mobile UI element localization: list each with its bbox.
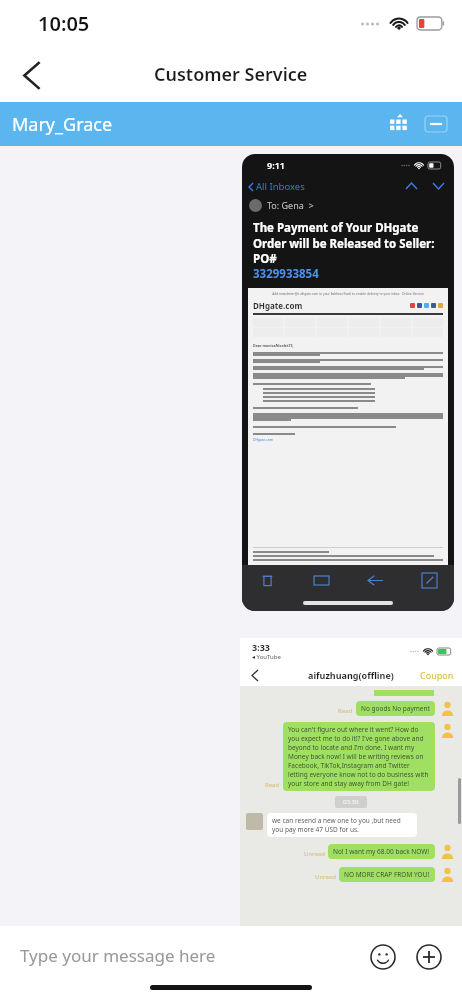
staticText: To: Gena >	[267, 199, 314, 211]
staticText: DHgate.com	[253, 437, 273, 442]
staticText: 03:30	[343, 798, 359, 806]
staticText: You can't figure out where it went? How …	[288, 725, 430, 788]
staticText: ◂ YouTube	[252, 653, 281, 661]
staticText: 9:11	[267, 159, 285, 171]
button[interactable]: Apps	[382, 106, 418, 142]
staticText: we can resend a new one to you ,but need…	[272, 816, 412, 834]
staticText: Read	[265, 781, 280, 789]
button[interactable]: 3:33	[240, 638, 462, 926]
button[interactable]: Back	[8, 52, 54, 98]
staticText: Customer Service	[154, 62, 308, 87]
staticText: Unread	[304, 850, 325, 858]
button[interactable]: Minimize	[418, 106, 454, 142]
button[interactable]: 9:11	[242, 154, 454, 611]
staticText: Type your message here	[20, 944, 216, 967]
staticText: Unread	[315, 873, 336, 881]
button[interactable]: Add attachment	[410, 938, 448, 976]
staticText: All Inboxes	[256, 180, 305, 193]
button[interactable]: Emoji	[364, 938, 402, 976]
staticText: 10:05	[38, 10, 90, 37]
staticText: No! I want my 68.00 back NOW!	[333, 847, 430, 856]
staticText: The Payment of Your DHgate Order will be…	[253, 220, 443, 266]
staticText: Coupon	[420, 669, 454, 681]
staticText: Add newsletter@e-dhgate.com to your Addr…	[253, 292, 443, 296]
staticText: 3:33	[252, 641, 270, 653]
staticText: 3329933854	[253, 266, 319, 282]
staticText: Mary_Grace	[12, 112, 113, 137]
staticText: aifuzhuang(offline)	[308, 669, 394, 681]
staticText: Read	[338, 707, 353, 715]
staticText: No goods No payment	[361, 704, 430, 713]
staticText: NO MORE CRAP FROM YOU!	[344, 870, 430, 879]
staticText: DHgate.com	[253, 300, 303, 311]
staticText: Dear monicaNicolet73,	[253, 343, 294, 348]
